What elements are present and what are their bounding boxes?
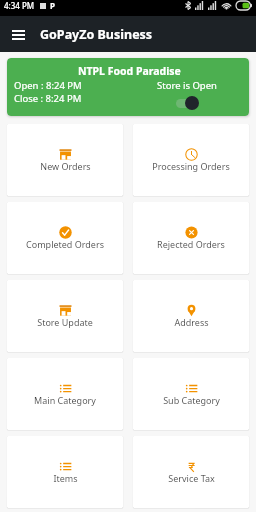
staticText: Close : 8:24 PM (14, 92, 82, 105)
staticText: Address (174, 316, 209, 328)
staticText: GoPayZo Business (40, 26, 153, 43)
staticText: 4:34 PM (4, 0, 35, 11)
button[interactable]: NTPL Food Paradise (7, 58, 249, 116)
staticText: NTPL Food Paradise (78, 64, 181, 78)
staticText: Store Update (37, 316, 93, 328)
button[interactable]: Store Update (7, 280, 123, 352)
staticText: Service Tax (168, 472, 215, 484)
button[interactable]: Completed Orders (7, 202, 123, 274)
staticText: New Orders (40, 160, 91, 172)
button[interactable]: Sub Category (133, 358, 249, 430)
staticText: Items (53, 472, 78, 484)
staticText: P (50, 0, 55, 11)
staticText: Main Category (34, 394, 96, 406)
button[interactable]: Open navigation menu (6, 22, 31, 47)
button[interactable]: Store open toggle (176, 96, 199, 110)
button[interactable]: Main Category (7, 358, 123, 430)
button[interactable]: Items (7, 436, 123, 508)
staticText: Rejected Orders (157, 238, 225, 250)
button[interactable]: Processing Orders (133, 124, 249, 196)
button[interactable]: Rejected Orders (133, 202, 249, 274)
button[interactable]: Address (133, 280, 249, 352)
staticText: Open : 8:24 PM (14, 79, 82, 92)
staticText: Processing Orders (152, 160, 230, 172)
staticText: Sub Category (163, 394, 220, 406)
button[interactable]: Service Tax (133, 436, 249, 508)
staticText: Completed Orders (26, 238, 104, 250)
staticText: Store is Open (157, 79, 217, 92)
button[interactable]: New Orders (7, 124, 123, 196)
